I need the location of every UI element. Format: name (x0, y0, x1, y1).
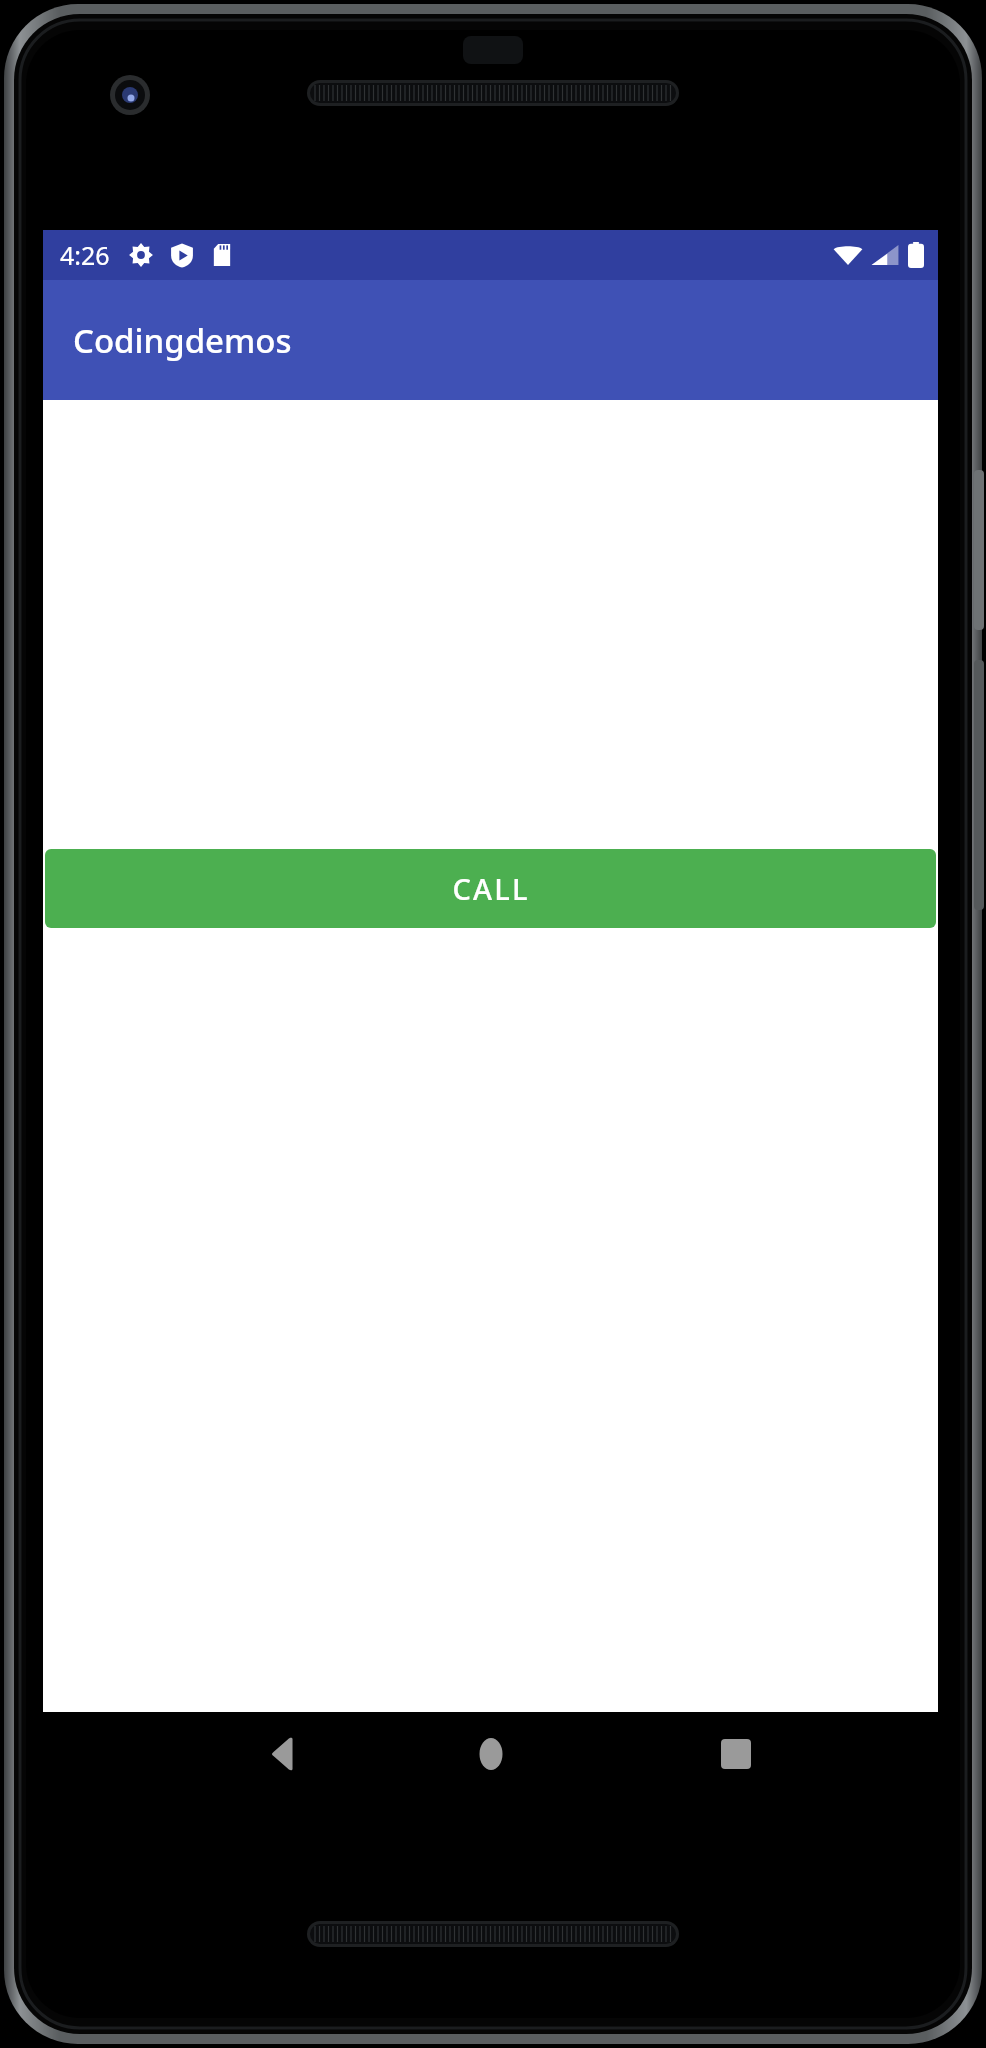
button[interactable]: Home (408, 1712, 573, 1822)
button[interactable]: Back (200, 1712, 365, 1822)
button[interactable]: CALL (45, 849, 936, 928)
button[interactable]: Recent apps (653, 1712, 818, 1822)
staticText: Codingdemos (73, 318, 292, 363)
staticText: 4:26 (60, 238, 110, 272)
staticText: CALL (452, 869, 530, 908)
